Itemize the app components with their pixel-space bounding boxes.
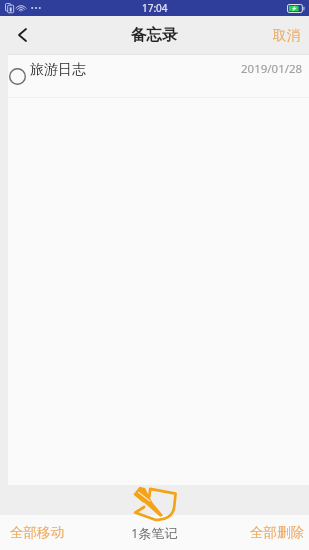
button[interactable]: 取消: [261, 16, 309, 54]
staticText: 取消: [273, 27, 300, 44]
staticText: 2019/01/28: [241, 61, 303, 77]
button[interactable]: 全部移动: [0, 515, 74, 550]
staticText: 旅游日志: [30, 61, 86, 79]
staticText: 备忘录: [131, 25, 178, 45]
button[interactable]: Back: [0, 16, 44, 54]
button[interactable]: 全部删除: [240, 515, 309, 550]
staticText: 17:04: [142, 1, 168, 15]
button[interactable]: 旅游日志: [8, 55, 309, 97]
staticText: 全部移动: [10, 524, 64, 541]
staticText: 全部删除: [250, 524, 304, 541]
staticText: 1条笔记: [131, 524, 178, 542]
